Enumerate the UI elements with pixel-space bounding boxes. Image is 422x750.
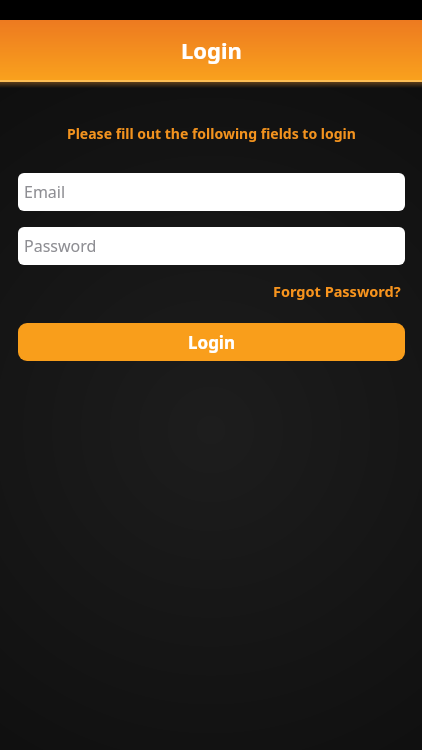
button[interactable]: Login — [18, 323, 405, 361]
staticText: Forgot Password? — [273, 281, 401, 301]
staticText: Password — [24, 235, 97, 257]
staticText: Please fill out the following fields to … — [67, 124, 356, 143]
staticText: Login — [188, 331, 236, 354]
button[interactable]: Forgot Password? — [273, 281, 401, 301]
button[interactable]: Password — [18, 227, 405, 265]
staticText: Login — [181, 35, 242, 65]
button[interactable]: Email — [18, 173, 405, 211]
staticText: Email — [24, 181, 66, 203]
